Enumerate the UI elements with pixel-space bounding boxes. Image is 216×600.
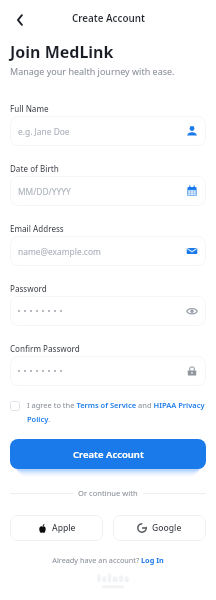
button[interactable]: Back bbox=[9, 9, 31, 31]
staticText: Full Name bbox=[10, 103, 49, 114]
staticText: Create Account bbox=[72, 12, 145, 25]
staticText: Join MedLink bbox=[10, 41, 114, 63]
button[interactable]: e.g. Jane Doe bbox=[10, 116, 206, 146]
staticText: Apple bbox=[52, 522, 76, 534]
staticText: Google bbox=[152, 522, 182, 534]
button[interactable]: name@example.com bbox=[10, 236, 206, 266]
staticText: Email Address bbox=[10, 223, 64, 234]
button[interactable] bbox=[10, 296, 206, 326]
staticText: Date of Birth bbox=[10, 163, 59, 174]
staticText: Create Account bbox=[73, 448, 144, 461]
staticText: Or continue with bbox=[78, 488, 138, 498]
staticText: Manage your health journey with ease. bbox=[10, 65, 175, 77]
button[interactable] bbox=[10, 356, 206, 386]
button[interactable]: Apple bbox=[10, 515, 103, 541]
staticText: e.g. Jane Doe bbox=[18, 126, 186, 137]
button[interactable]: Create Account bbox=[10, 439, 206, 469]
button[interactable]: Google bbox=[113, 515, 206, 541]
staticText: MM/DD/YYYY bbox=[18, 186, 186, 197]
button[interactable]: I agree to the Terms of Service and HIPA… bbox=[10, 400, 206, 424]
staticText: Password bbox=[10, 283, 47, 294]
staticText: name@example.com bbox=[18, 246, 186, 257]
staticText: I agree to the Terms of Service and HIPA… bbox=[27, 400, 206, 424]
staticText: Confirm Password bbox=[10, 343, 80, 354]
button[interactable]: MM/DD/YYYY bbox=[10, 176, 206, 206]
button[interactable]: Already have an account? Log In bbox=[52, 555, 164, 565]
